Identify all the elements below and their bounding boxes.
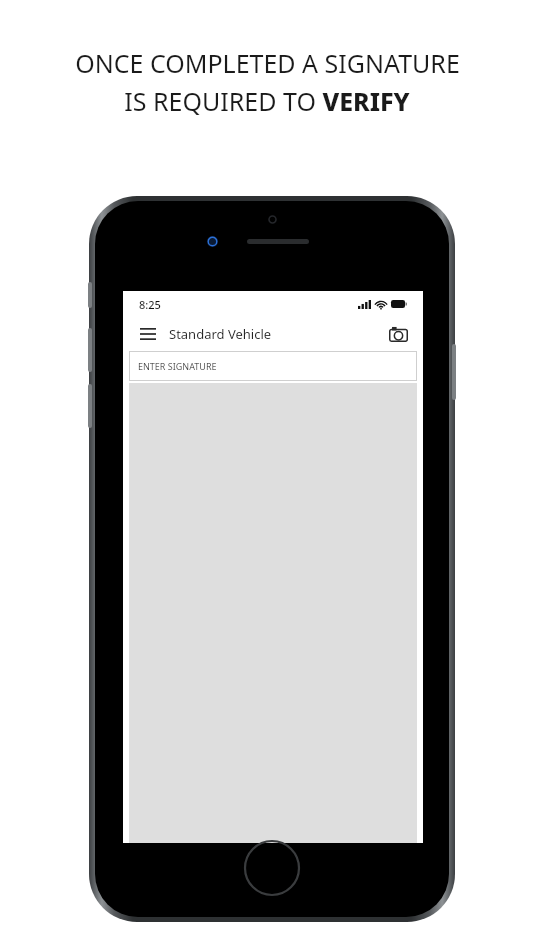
staticText: IS REQUIRED TO VERIFY	[124, 84, 410, 118]
staticText: Standard Vehicle	[169, 325, 272, 343]
staticText: ENTER SIGNATURE	[138, 360, 217, 372]
button[interactable]: Take photo	[385, 321, 411, 347]
staticText: ONCE COMPLETED A SIGNATURE	[75, 46, 460, 80]
button[interactable]: ENTER SIGNATURE	[129, 351, 417, 381]
staticText: 8:25	[139, 297, 161, 312]
button[interactable]: Open navigation menu	[135, 321, 161, 347]
